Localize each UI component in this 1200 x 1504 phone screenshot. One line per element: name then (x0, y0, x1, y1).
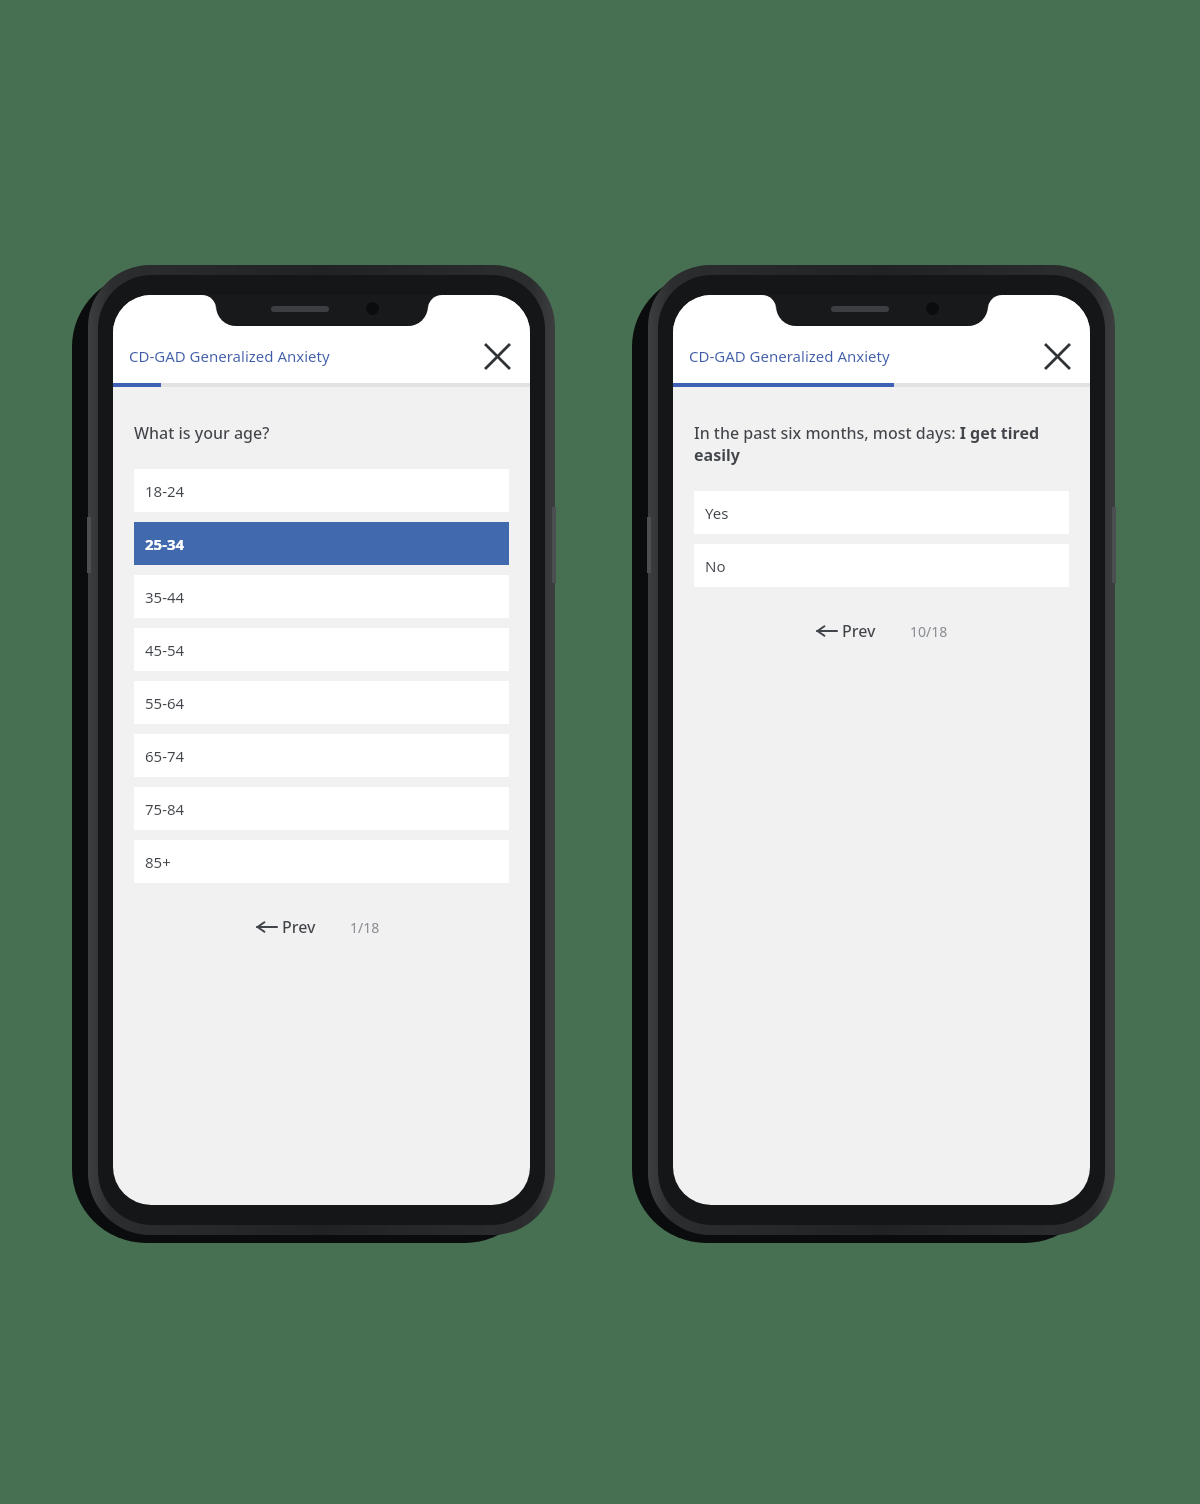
staticText: 65-74 (145, 746, 185, 766)
button[interactable]: Yes (694, 491, 1069, 534)
staticText: 45-54 (145, 640, 185, 660)
button[interactable]: 75-84 (134, 787, 509, 830)
staticText: CD-GAD Generalized Anxiety (129, 346, 330, 366)
button[interactable]: Close (1034, 333, 1080, 379)
button[interactable]: Prev (250, 910, 322, 944)
staticText: 75-84 (145, 799, 185, 819)
button[interactable]: 45-54 (134, 628, 509, 671)
button[interactable]: Close (474, 333, 520, 379)
staticText: No (705, 556, 726, 576)
staticText: In the past six months, most days: I get… (694, 422, 1069, 466)
staticText: 35-44 (145, 587, 185, 607)
button[interactable]: 85+ (134, 840, 509, 883)
button[interactable]: 25-34 (134, 522, 509, 565)
staticText: 85+ (145, 852, 171, 872)
button[interactable]: 65-74 (134, 734, 509, 777)
staticText: Prev (282, 916, 316, 938)
button[interactable]: Prev (810, 614, 882, 648)
staticText: Prev (842, 620, 876, 642)
staticText: 10/18 (910, 622, 948, 641)
staticText: What is your age? (134, 422, 270, 444)
staticText: CD-GAD Generalized Anxiety (689, 346, 890, 366)
button[interactable]: 18-24 (134, 469, 509, 512)
staticText: 1/18 (350, 918, 380, 937)
button[interactable]: 55-64 (134, 681, 509, 724)
staticText: Yes (705, 503, 729, 523)
button[interactable]: 35-44 (134, 575, 509, 618)
staticText: 25-34 (145, 534, 185, 554)
staticText: 18-24 (145, 481, 185, 501)
button[interactable]: No (694, 544, 1069, 587)
staticText: 55-64 (145, 693, 185, 713)
